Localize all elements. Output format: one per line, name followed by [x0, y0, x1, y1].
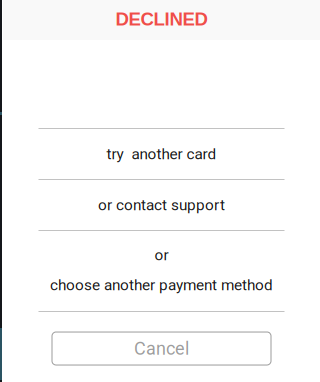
staticText: choose another payment method: [50, 276, 273, 294]
button[interactable]: try another card: [38, 129, 284, 179]
staticText: try another card: [106, 145, 216, 163]
button[interactable]: Cancel: [52, 332, 271, 365]
staticText: or contact support: [98, 196, 225, 214]
staticText: Cancel: [134, 338, 189, 359]
button[interactable]: or: [38, 231, 284, 311]
staticText: or: [154, 246, 168, 264]
button[interactable]: or contact support: [38, 180, 284, 230]
staticText: DECLINED: [115, 9, 207, 29]
